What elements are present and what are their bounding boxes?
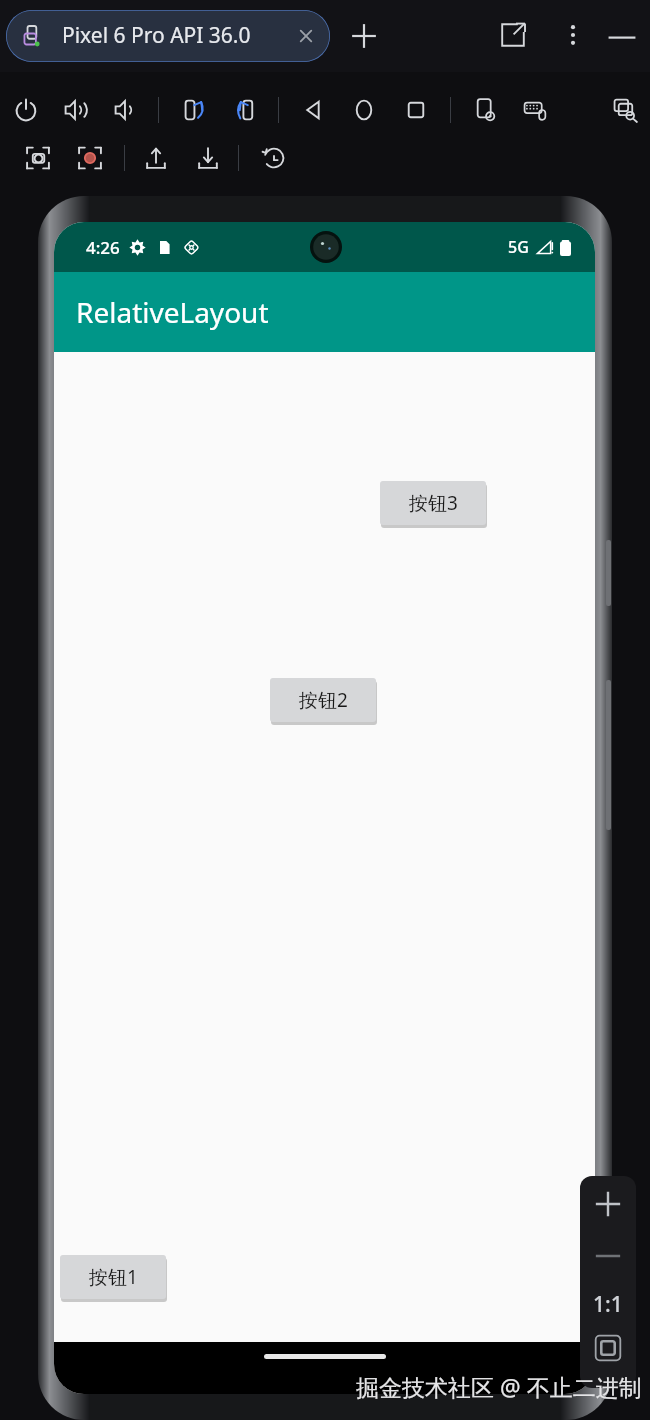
button[interactable]: Close tab [294, 24, 318, 48]
button[interactable]: Virtual sensors [468, 92, 504, 128]
staticText: Pixel 6 Pro API 36.0 [62, 21, 251, 50]
button[interactable]: Zoom in [592, 1188, 624, 1220]
button[interactable]: 按钮2 [270, 678, 376, 722]
staticText: 按钮1 [89, 1264, 138, 1290]
button[interactable]: 1:1 [586, 1288, 630, 1320]
staticText: 4:26 [86, 236, 120, 259]
button[interactable]: Zoom out [592, 1240, 624, 1272]
staticText: 1:1 [593, 1290, 623, 1319]
button[interactable]: Rotate left [178, 92, 214, 128]
button[interactable]: History [256, 140, 292, 176]
button[interactable]: Keyboard and mouse [518, 92, 554, 128]
button[interactable]: Pop out [498, 20, 528, 50]
button[interactable]: Power [8, 92, 44, 128]
button[interactable]: 按钮3 [380, 481, 486, 525]
button[interactable]: Display mode [608, 92, 644, 128]
button[interactable]: Download [190, 140, 226, 176]
button[interactable]: More options [558, 20, 588, 50]
staticText: 5G [508, 236, 529, 258]
button[interactable]: Take screenshot [20, 140, 56, 176]
button[interactable]: Minimize [606, 20, 638, 52]
button[interactable]: Home [346, 92, 382, 128]
staticText: RelativeLayout [76, 293, 269, 331]
button[interactable]: Home gesture [264, 1354, 386, 1359]
button[interactable]: New tab [346, 18, 382, 54]
button[interactable]: Pixel 6 Pro API 36.0 [6, 10, 330, 62]
button[interactable]: Upload [138, 140, 174, 176]
button[interactable]: Power button [606, 540, 611, 606]
button[interactable]: Volume up [58, 92, 94, 128]
button[interactable]: More tools [312, 215, 340, 243]
button[interactable]: Record screen [72, 140, 108, 176]
button[interactable]: Zoom to fit [594, 1334, 622, 1362]
button[interactable]: Overview [398, 92, 434, 128]
button[interactable]: Volume down [108, 92, 144, 128]
staticText: 按钮2 [299, 687, 348, 713]
button[interactable]: 按钮1 [60, 1255, 166, 1299]
button[interactable]: Back [296, 92, 332, 128]
button[interactable]: Rotate right [228, 92, 264, 128]
staticText: 按钮3 [409, 490, 458, 516]
staticText: 掘金技术社区 @ 不止二进制 [356, 1371, 642, 1402]
